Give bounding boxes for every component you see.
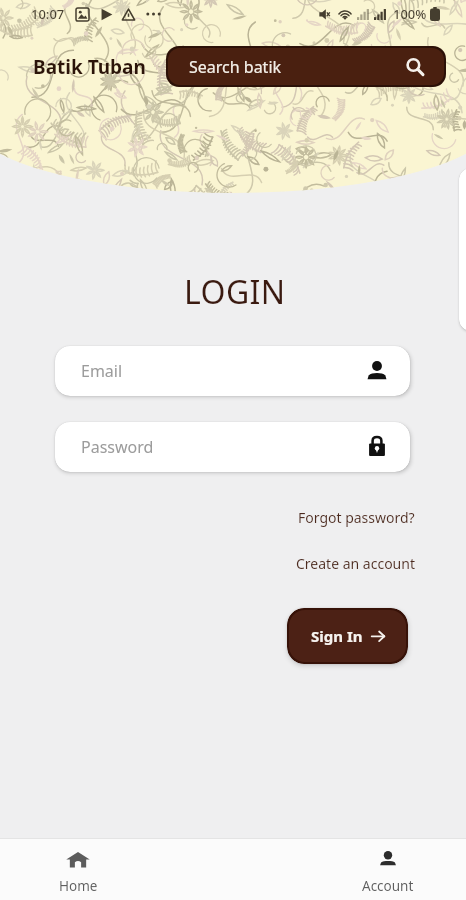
button[interactable]: Forgot password? [294,504,419,531]
button[interactable]: Create an account [292,550,419,577]
button[interactable]: Search [405,57,425,77]
button[interactable]: Home [38,839,118,900]
button[interactable]: Search batik [168,48,444,85]
staticText: Search batik [189,56,282,78]
staticText: Sign In [311,626,363,646]
button[interactable]: Sign In [289,610,406,662]
button[interactable]: Password [55,422,410,472]
staticText: Email [81,360,123,382]
staticText: Account [362,877,414,895]
staticText: Home [59,877,98,895]
staticText: LOGIN [184,270,286,314]
staticText: Password [81,436,154,458]
staticText: 10:07 [31,5,65,23]
staticText: 100% [393,5,427,23]
staticText: Forgot password? [298,508,415,527]
button[interactable]: Account [348,839,428,900]
staticText: Create an account [296,554,415,573]
button[interactable]: Email [55,346,410,396]
staticText: Batik Tuban [33,54,146,80]
